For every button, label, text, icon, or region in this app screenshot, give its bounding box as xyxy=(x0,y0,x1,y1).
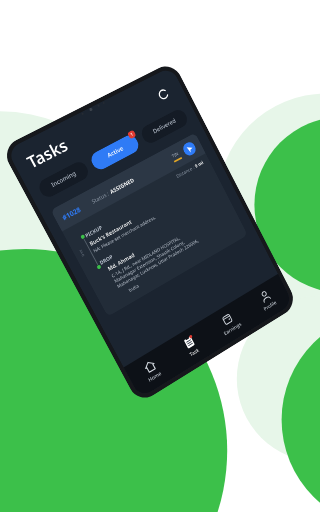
staticText: Md. Ahmad xyxy=(106,251,136,272)
staticText: 1 xyxy=(129,131,134,138)
staticText: PICKUP xyxy=(84,224,104,239)
staticText: Earnings xyxy=(223,320,243,337)
staticText: 9 mi xyxy=(194,159,204,169)
staticText: C-14, J Rd., near MIDLAND HOSPITAL, xyxy=(110,235,181,279)
button[interactable]: Delivered xyxy=(139,107,190,146)
button[interactable]: Active xyxy=(88,132,141,172)
staticText: Delivered xyxy=(151,117,178,136)
staticText: #1028 xyxy=(60,204,82,222)
staticText: TIN xyxy=(171,151,180,159)
staticText: 9 mi xyxy=(78,248,85,257)
button[interactable]: Profile xyxy=(241,274,293,326)
button[interactable]: Earnings xyxy=(202,296,256,350)
staticText: Active xyxy=(106,144,125,160)
staticText: Task xyxy=(188,347,200,358)
staticText: DROP xyxy=(99,253,114,266)
staticText: Tasks xyxy=(23,134,72,173)
staticText: Incoming xyxy=(50,169,78,189)
staticText: Mahanagar, Lucknow, Uttar Pradesh 226006… xyxy=(116,237,199,289)
button[interactable]: Task xyxy=(163,320,218,374)
staticText: India xyxy=(127,282,140,293)
staticText: Profile xyxy=(263,299,278,312)
button[interactable]: #1028 xyxy=(50,133,248,317)
staticText: Status : xyxy=(90,189,112,205)
staticText: Buck's Restaurant xyxy=(88,218,133,248)
button[interactable]: Home xyxy=(123,343,180,398)
staticText: Mahanagar Extension, Shastik Colony, xyxy=(113,238,186,284)
staticText: ASSIGNED xyxy=(108,176,136,195)
button[interactable]: Refresh xyxy=(151,82,175,106)
staticText: Distance : xyxy=(175,163,196,179)
staticText: Home xyxy=(147,370,163,383)
staticText: NA: Please set merchant address. xyxy=(92,213,157,254)
button[interactable]: Incoming xyxy=(36,159,91,200)
button[interactable]: Navigate xyxy=(181,140,198,158)
